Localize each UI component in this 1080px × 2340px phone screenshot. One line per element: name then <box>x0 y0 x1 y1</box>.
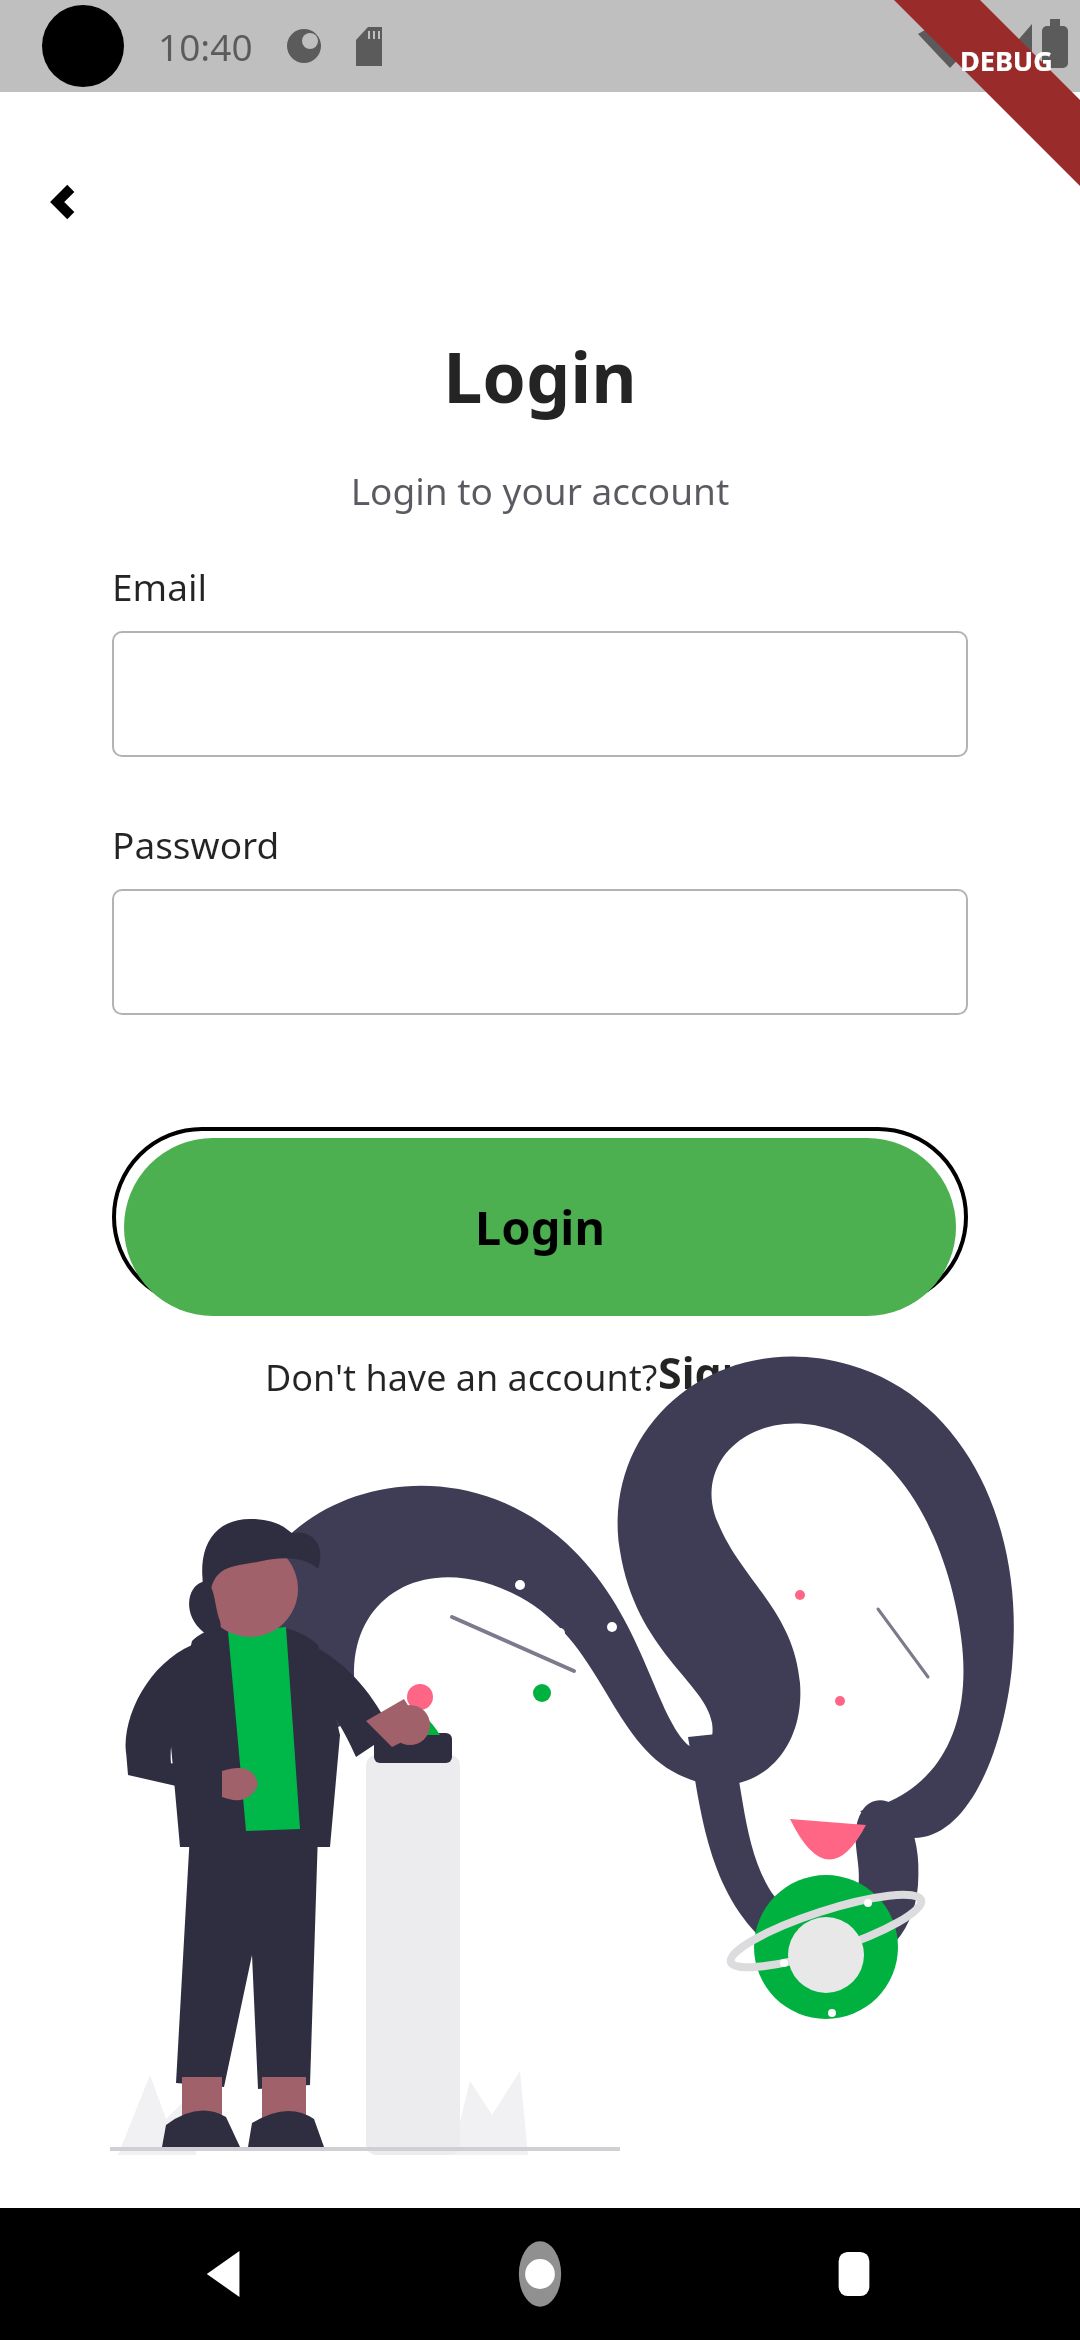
button[interactable]: Recent apps <box>806 2226 902 2322</box>
button[interactable]: Home <box>492 2226 588 2322</box>
staticText: Password <box>112 819 280 869</box>
staticText: Login <box>0 328 1080 423</box>
button[interactable]: Login <box>112 1127 968 1327</box>
button[interactable] <box>112 631 968 757</box>
staticText: 10:40 <box>158 21 253 71</box>
button[interactable]: Back <box>178 2226 274 2322</box>
button[interactable] <box>112 889 968 1015</box>
button[interactable]: Don't have an account? <box>265 1353 658 1402</box>
staticText: Login to your account <box>0 465 1080 515</box>
staticText: Email <box>112 561 208 611</box>
staticText: Login <box>475 1195 605 1259</box>
button[interactable]: Sign up <box>658 1343 816 1402</box>
button[interactable]: Back <box>18 158 106 246</box>
staticText: DEBUG <box>960 42 1053 79</box>
